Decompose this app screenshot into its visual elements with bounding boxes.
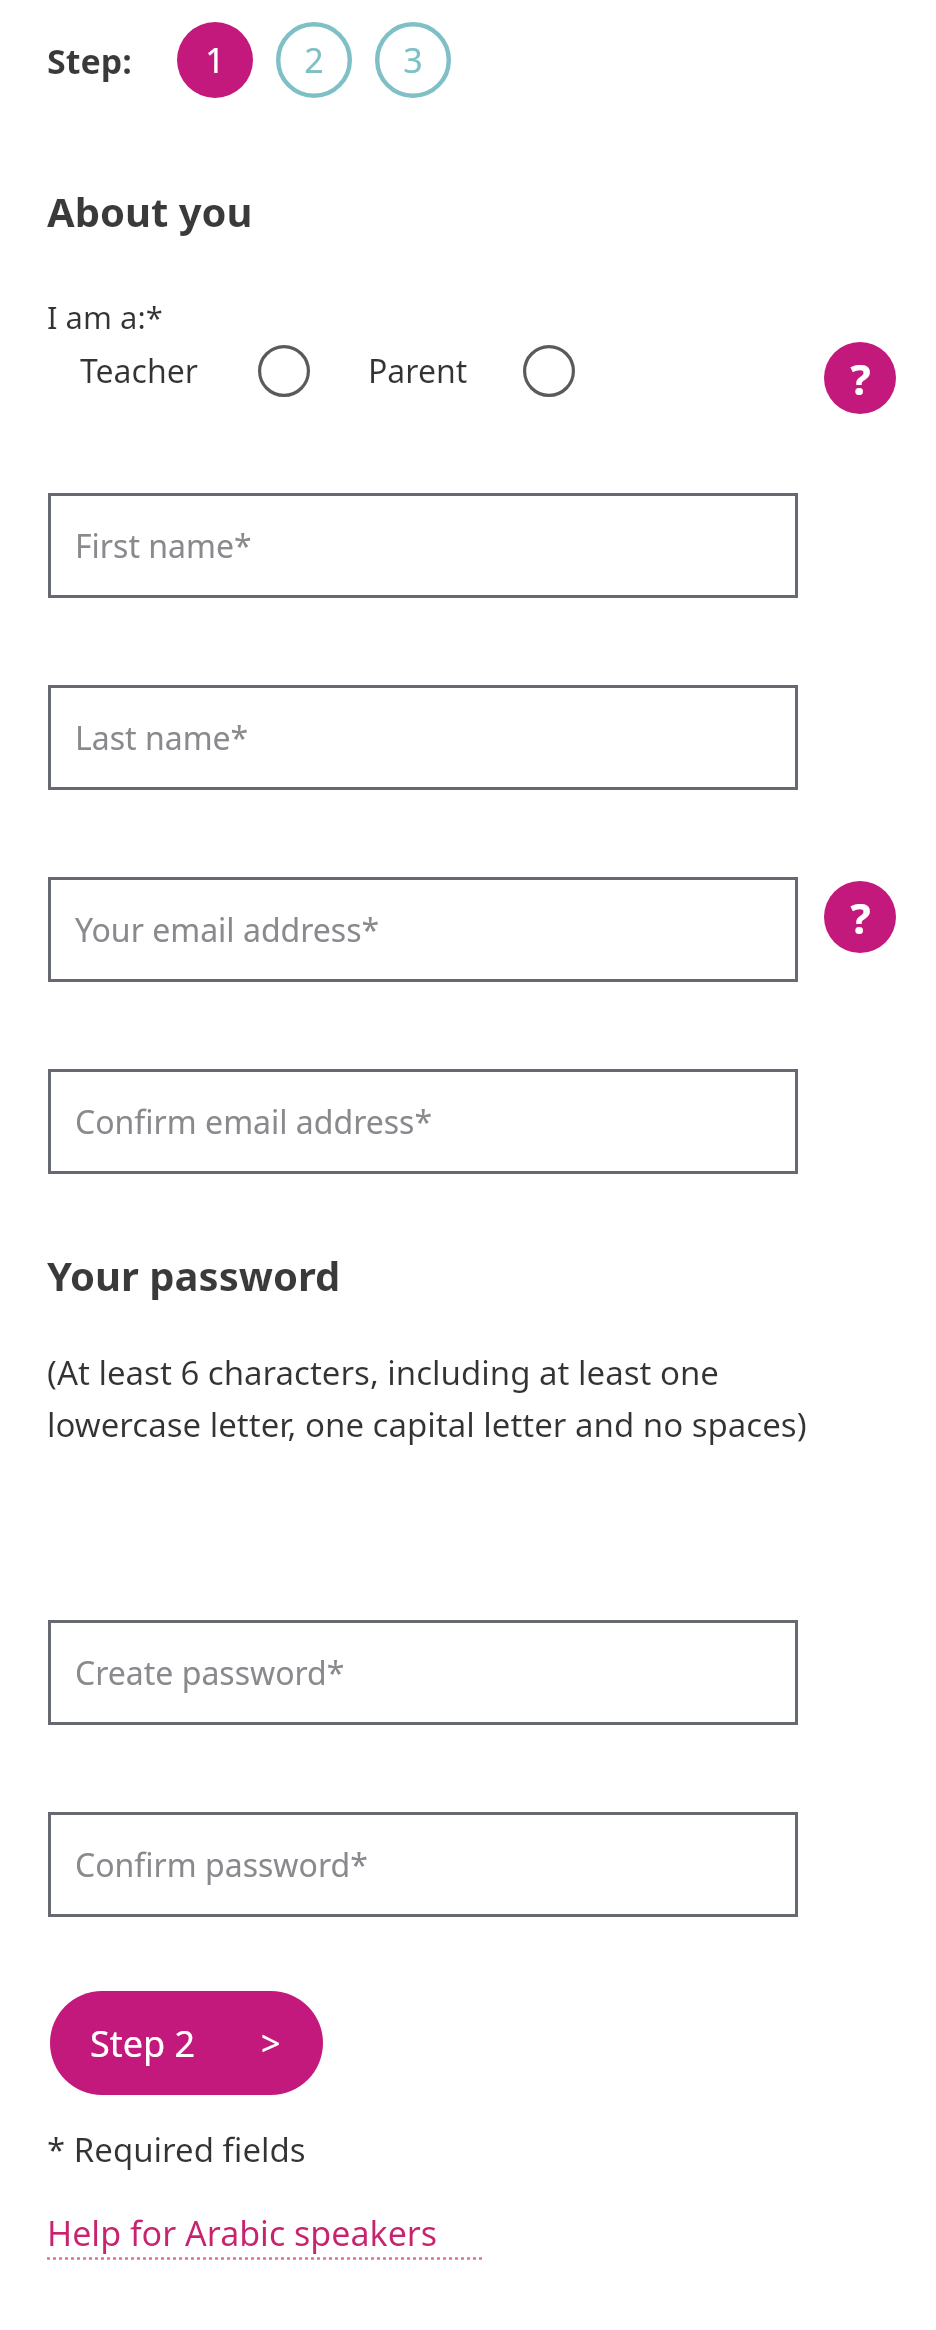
- button[interactable]: Help: [824, 342, 896, 414]
- button[interactable]: Step 1: [177, 22, 253, 98]
- button[interactable]: First name*: [48, 493, 798, 598]
- staticText: Teacher: [80, 349, 198, 393]
- staticText: * Required fields: [47, 2127, 306, 2172]
- staticText: First name*: [75, 524, 252, 568]
- staticText: 1: [205, 37, 225, 83]
- staticText: ?: [850, 889, 871, 946]
- staticText: ?: [850, 350, 871, 407]
- button[interactable]: Confirm password*: [48, 1812, 798, 1917]
- staticText: Your password: [47, 1248, 341, 1302]
- staticText: Confirm password*: [75, 1843, 368, 1887]
- button[interactable]: Step 2: [276, 22, 352, 98]
- staticText: Confirm email address*: [75, 1100, 433, 1144]
- staticText: Step 2: [90, 2019, 196, 2068]
- button[interactable]: Last name*: [48, 685, 798, 790]
- staticText: Your email address*: [75, 908, 380, 952]
- button[interactable]: Confirm email address*: [48, 1069, 798, 1174]
- button[interactable]: Parent: [368, 340, 468, 402]
- button[interactable]: Step 3: [375, 22, 451, 98]
- button[interactable]: Help for Arabic speakers: [47, 2210, 482, 2256]
- button[interactable]: Step 2: [50, 1991, 323, 2095]
- button[interactable]: Your email address*: [48, 877, 798, 982]
- staticText: Help for Arabic speakers: [47, 2210, 438, 2256]
- staticText: 3: [403, 37, 423, 83]
- staticText: Parent: [368, 349, 468, 393]
- button[interactable]: Create password*: [48, 1620, 798, 1725]
- staticText: Create password*: [75, 1651, 345, 1695]
- button[interactable]: Teacher: [80, 340, 198, 402]
- staticText: (At least 6 characters, including at lea…: [47, 1350, 847, 1446]
- staticText: About you: [47, 184, 253, 238]
- staticText: I am a:*: [47, 296, 163, 338]
- staticText: Last name*: [75, 716, 249, 760]
- staticText: 2: [304, 37, 324, 83]
- staticText: Step:: [47, 38, 132, 84]
- staticText: >: [261, 2020, 281, 2066]
- button[interactable]: Help: [824, 881, 896, 953]
